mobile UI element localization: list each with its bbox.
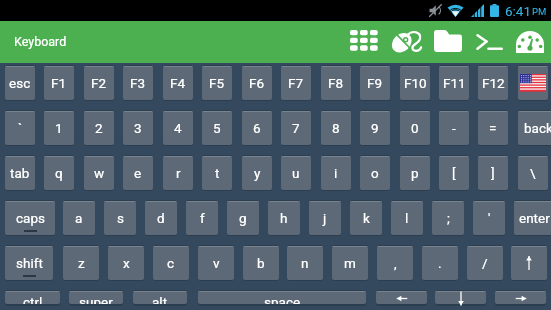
button[interactable]: p [400, 156, 430, 190]
button[interactable]: c [153, 246, 189, 280]
button[interactable]: ; [432, 201, 464, 235]
staticText: F9 [367, 75, 383, 91]
button[interactable]: shift [5, 246, 53, 280]
button[interactable]: F7 [281, 66, 311, 100]
button[interactable]: k [350, 201, 382, 235]
staticText: Keyboard [14, 34, 67, 49]
button[interactable]: 5 [202, 111, 232, 145]
button[interactable]: space [198, 291, 366, 304]
staticText: 2 [95, 120, 103, 136]
button[interactable]: Language [518, 66, 548, 100]
button[interactable]: h [268, 201, 300, 235]
button[interactable]: F3 [123, 66, 153, 100]
button[interactable]: Arrow down [435, 291, 486, 304]
button[interactable]: . [422, 246, 458, 280]
button[interactable]: r [163, 156, 193, 190]
button[interactable]: back [518, 111, 551, 145]
staticText: u [292, 165, 300, 181]
button[interactable]: z [63, 246, 99, 280]
button[interactable]: 8 [321, 111, 351, 145]
button[interactable]: F6 [242, 66, 272, 100]
button[interactable]: 0 [400, 111, 430, 145]
button[interactable]: Arrow right [495, 291, 546, 304]
staticText: r [176, 165, 181, 181]
staticText: esc [9, 75, 31, 91]
button[interactable]: Files [428, 21, 468, 63]
button[interactable]: , [377, 246, 413, 280]
staticText: n [301, 255, 309, 271]
button[interactable]: w [84, 156, 114, 190]
button[interactable]: x [108, 246, 144, 280]
staticText: F7 [288, 75, 304, 91]
button[interactable]: F12 [478, 66, 508, 100]
button[interactable]: v [198, 246, 234, 280]
staticText: b [257, 255, 265, 271]
staticText: k [363, 210, 370, 226]
button[interactable]: = [478, 111, 508, 145]
button[interactable]: enter [514, 201, 551, 235]
button[interactable]: g [227, 201, 259, 235]
button[interactable]: / [467, 246, 503, 280]
button[interactable]: tab [5, 156, 35, 190]
button[interactable]: 3 [123, 111, 153, 145]
staticText: ctrl [23, 294, 43, 304]
button[interactable]: o [360, 156, 390, 190]
button[interactable]: d [145, 201, 177, 235]
button[interactable]: 4 [163, 111, 193, 145]
button[interactable]: 1 [44, 111, 74, 145]
button[interactable]: F11 [439, 66, 469, 100]
button[interactable]: F2 [84, 66, 114, 100]
button[interactable]: Dashboard [510, 21, 550, 63]
button[interactable]: super [69, 291, 123, 304]
button[interactable]: caps [5, 201, 55, 235]
button[interactable]: Apps [344, 21, 386, 63]
button[interactable]: i [321, 156, 351, 190]
button[interactable]: 7 [281, 111, 311, 145]
button[interactable]: ctrl [5, 291, 60, 304]
button[interactable]: s [104, 201, 136, 235]
staticText: caps [16, 210, 45, 226]
button[interactable]: ' [473, 201, 505, 235]
staticText: m [344, 255, 356, 271]
button[interactable]: 2 [84, 111, 114, 145]
button[interactable]: e [123, 156, 153, 190]
button[interactable]: Arrow up [511, 246, 547, 280]
button[interactable]: F4 [163, 66, 193, 100]
button[interactable]: alt [133, 291, 187, 304]
button[interactable]: l [391, 201, 423, 235]
button[interactable]: Arrow left [376, 291, 427, 304]
button[interactable]: n [287, 246, 323, 280]
button[interactable]: 9 [360, 111, 390, 145]
staticText: ` [18, 120, 23, 136]
button[interactable]: u [281, 156, 311, 190]
staticText: j [323, 210, 327, 226]
staticText: enter [519, 210, 550, 226]
staticText: , [394, 255, 397, 271]
staticText: c [167, 255, 175, 271]
button[interactable]: m [332, 246, 368, 280]
button[interactable]: F10 [400, 66, 430, 100]
button[interactable]: b [243, 246, 279, 280]
button[interactable]: j [309, 201, 341, 235]
button[interactable]: 6 [242, 111, 272, 145]
button[interactable]: \ [518, 156, 548, 190]
staticText: 8 [332, 120, 340, 136]
button[interactable]: q [44, 156, 74, 190]
button[interactable]: Terminal [470, 21, 509, 63]
button[interactable]: F1 [44, 66, 74, 100]
button[interactable]: Mouse [386, 21, 428, 63]
button[interactable]: y [242, 156, 272, 190]
button[interactable]: esc [5, 66, 35, 100]
button[interactable]: [ [439, 156, 469, 190]
button[interactable]: F8 [321, 66, 351, 100]
button[interactable]: F9 [360, 66, 390, 100]
button[interactable]: t [202, 156, 232, 190]
button[interactable]: F5 [202, 66, 232, 100]
staticText: F10 [404, 75, 427, 91]
button[interactable]: a [63, 201, 95, 235]
button[interactable]: f [186, 201, 218, 235]
button[interactable]: ] [478, 156, 508, 190]
button[interactable]: - [439, 111, 469, 145]
button[interactable]: ` [5, 111, 35, 145]
staticText: - [452, 120, 456, 136]
